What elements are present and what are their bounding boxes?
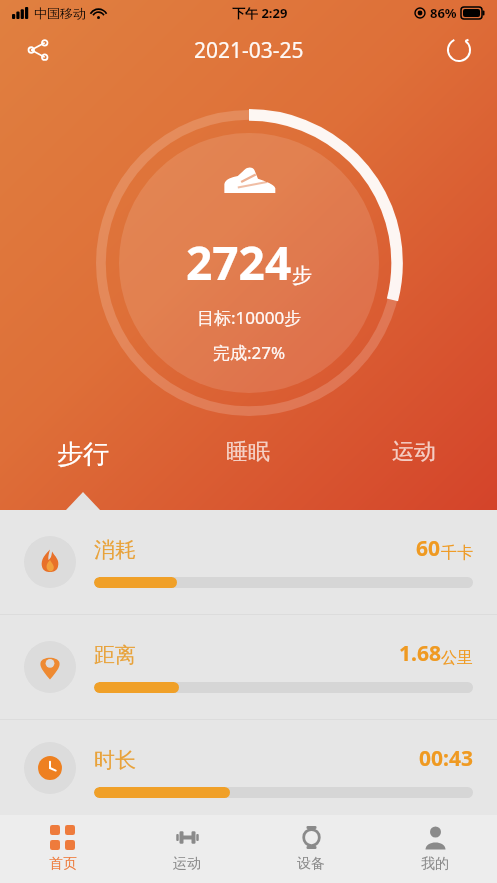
staticText: 00:43 xyxy=(419,744,473,773)
staticText: 千卡 xyxy=(441,543,473,563)
staticText: 消耗 xyxy=(94,537,136,563)
staticText: 距离 xyxy=(94,642,136,668)
staticText: 睡眠 xyxy=(226,438,270,466)
staticText: 下午 2:29 xyxy=(232,4,288,22)
staticText: 步 xyxy=(292,263,312,288)
button[interactable]: 距离 xyxy=(0,615,497,719)
staticText: 中国移动 xyxy=(34,5,86,21)
staticText: 86% xyxy=(430,4,457,22)
button[interactable]: Refresh xyxy=(437,28,481,72)
staticText: 完成:27% xyxy=(213,341,286,364)
staticText: 60 xyxy=(416,534,441,563)
button[interactable]: 睡眠 xyxy=(165,430,331,510)
button[interactable]: 步行 xyxy=(0,430,165,510)
staticText: 2021-03-25 xyxy=(194,36,304,65)
staticText: 我的 xyxy=(421,855,449,873)
staticText: 1.68 xyxy=(399,639,441,668)
staticText: 目标:10000步 xyxy=(197,306,302,329)
staticText: 设备 xyxy=(297,855,325,873)
button[interactable]: 首页 xyxy=(0,815,125,883)
button[interactable]: Share xyxy=(16,28,60,72)
staticText: 步行 xyxy=(57,438,109,471)
staticText: 2724 xyxy=(186,231,292,294)
button[interactable]: 消耗 xyxy=(0,510,497,614)
staticText: 首页 xyxy=(49,855,77,873)
staticText: 运动 xyxy=(173,855,201,873)
button[interactable]: 我的 xyxy=(373,815,497,883)
button[interactable]: 设备 xyxy=(249,815,373,883)
staticText: 时长 xyxy=(94,747,136,773)
button[interactable]: 运动 xyxy=(125,815,249,883)
staticText: 运动 xyxy=(392,438,436,466)
button[interactable]: 运动 xyxy=(331,430,497,510)
staticText: 公里 xyxy=(441,648,473,668)
button[interactable]: 时长 xyxy=(0,720,497,815)
